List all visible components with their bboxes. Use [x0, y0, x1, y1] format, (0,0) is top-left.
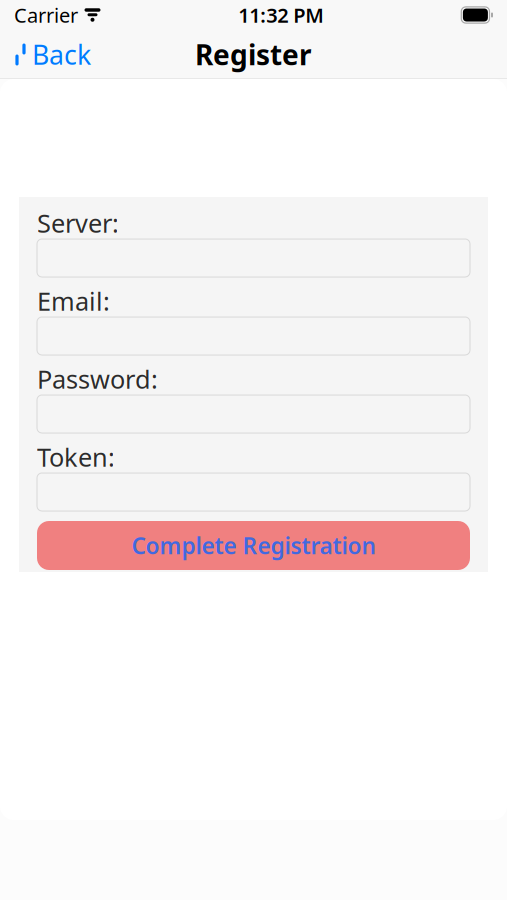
staticText: Server:	[37, 206, 119, 240]
staticText: Back	[32, 37, 91, 72]
button[interactable]: Back	[0, 30, 105, 79]
staticText: Email:	[37, 284, 110, 318]
staticText: Register	[195, 36, 312, 73]
button[interactable]: Complete Registration	[37, 521, 470, 570]
staticText: Password:	[37, 362, 158, 396]
staticText: Carrier	[14, 2, 78, 28]
staticText: Complete Registration	[131, 530, 375, 560]
staticText: 11:32 PM	[238, 2, 324, 28]
staticText: Token:	[37, 440, 115, 474]
